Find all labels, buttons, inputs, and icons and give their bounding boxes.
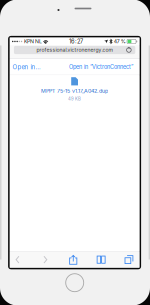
button[interactable]: Open in… (10, 59, 40, 75)
staticText: 49 KB (68, 96, 81, 102)
button[interactable]: Bookmarks (95, 252, 107, 268)
button[interactable]: Share (67, 252, 79, 268)
button[interactable]: Open in “VictronConnect” (69, 59, 139, 75)
button[interactable]: Tabs (123, 252, 135, 268)
button[interactable]: Back (11, 252, 24, 268)
staticText: professional.victronenergy.com (37, 47, 113, 53)
staticText: MPPT 75-15 v1.17_A042.dup (41, 88, 108, 94)
staticText: Open in “VictronConnect” (69, 64, 133, 70)
staticText: Open in… (12, 63, 40, 71)
staticText: 16:27 (69, 38, 83, 45)
staticText: KPN NL (24, 38, 42, 45)
button[interactable]: Forward (39, 252, 52, 268)
staticText: 47 % (114, 38, 126, 45)
